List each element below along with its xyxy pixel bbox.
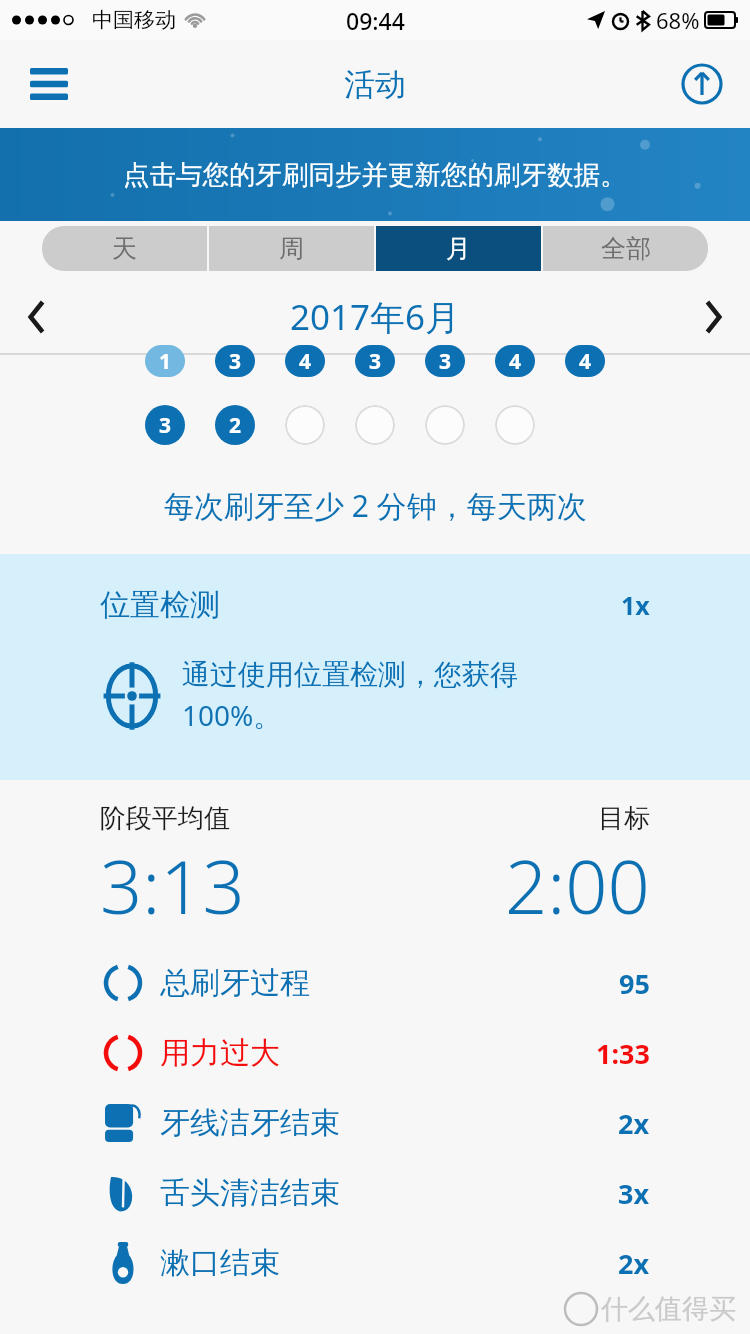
staticText: 点击与您的牙刷同步并更新您的刷牙数据。 <box>123 158 627 191</box>
button[interactable]: 漱口结束 <box>100 1228 650 1298</box>
staticText: 牙线洁牙结束 <box>160 1104 340 1142</box>
staticText: 2:00 <box>505 835 650 936</box>
button[interactable]: 位置检测 <box>0 554 750 780</box>
button[interactable] <box>355 405 395 445</box>
staticText: 舌头清洁结束 <box>160 1174 340 1212</box>
staticText: 全部 <box>601 233 651 264</box>
button[interactable]: 天 <box>42 226 207 271</box>
staticText: 68% <box>656 5 700 35</box>
staticText: 2x <box>618 1245 650 1282</box>
button[interactable]: 月 <box>376 226 541 271</box>
staticText: 什么值得买 <box>601 1292 736 1326</box>
staticText: 总刷牙过程 <box>160 964 310 1002</box>
staticText: 4 <box>509 347 522 376</box>
staticText: 100%。 <box>182 696 282 734</box>
staticText: 用力过大 <box>160 1034 280 1072</box>
button[interactable] <box>285 405 325 445</box>
staticText: 95 <box>619 965 650 1002</box>
staticText: 阶段平均值 <box>100 802 230 835</box>
button[interactable]: 4 <box>565 345 605 377</box>
staticText: 2x <box>618 1105 650 1142</box>
staticText: 活动 <box>344 65 406 104</box>
staticText: 4 <box>299 347 312 376</box>
button[interactable]: 4 <box>495 345 535 377</box>
button[interactable]: 1 <box>145 345 185 377</box>
button[interactable]: 2 <box>215 405 255 445</box>
button[interactable]: 总刷牙过程 <box>100 948 650 1018</box>
button[interactable]: 点击与您的牙刷同步并更新您的刷牙数据。 <box>0 128 750 221</box>
staticText: 1:33 <box>596 1035 650 1072</box>
button[interactable]: Previous month <box>0 281 74 353</box>
button[interactable]: 用力过大 <box>100 1018 650 1088</box>
button[interactable]: Sync up <box>666 48 738 120</box>
staticText: 3 <box>369 347 382 376</box>
button[interactable]: 3 <box>215 345 255 377</box>
staticText: 通过使用位置检测，您获得 <box>182 657 518 692</box>
button[interactable] <box>425 405 465 445</box>
button[interactable]: Menu <box>12 47 86 121</box>
staticText: 位置检测 <box>100 586 220 624</box>
button[interactable]: 牙线洁牙结束 <box>100 1088 650 1158</box>
staticText: 2017年6月 <box>290 293 461 341</box>
staticText: 3:13 <box>100 835 245 936</box>
staticText: 3 <box>159 411 172 440</box>
button[interactable]: 舌头清洁结束 <box>100 1158 650 1228</box>
staticText: 3x <box>618 1175 650 1212</box>
staticText: 3 <box>439 347 452 376</box>
button[interactable]: 全部 <box>543 226 708 271</box>
staticText: 3 <box>229 347 242 376</box>
button[interactable]: 4 <box>285 345 325 377</box>
button[interactable]: 3 <box>425 345 465 377</box>
button[interactable]: 3 <box>355 345 395 377</box>
staticText: 4 <box>579 347 592 376</box>
staticText: 1x <box>621 588 650 622</box>
staticText: 漱口结束 <box>160 1244 280 1282</box>
button[interactable] <box>495 405 535 445</box>
staticText: 目标 <box>598 802 650 835</box>
staticText: 中国移动 <box>92 7 176 33</box>
staticText: 09:44 <box>346 5 405 36</box>
staticText: 天 <box>112 233 137 264</box>
button[interactable]: Next month <box>676 281 750 353</box>
staticText: 每次刷牙至少 2 分钟，每天两次 <box>164 485 587 526</box>
button[interactable]: 周 <box>209 226 374 271</box>
staticText: 2 <box>229 411 242 440</box>
button[interactable]: 3 <box>145 405 185 445</box>
staticText: 月 <box>446 233 471 264</box>
staticText: 1 <box>159 347 172 376</box>
staticText: 周 <box>279 233 304 264</box>
